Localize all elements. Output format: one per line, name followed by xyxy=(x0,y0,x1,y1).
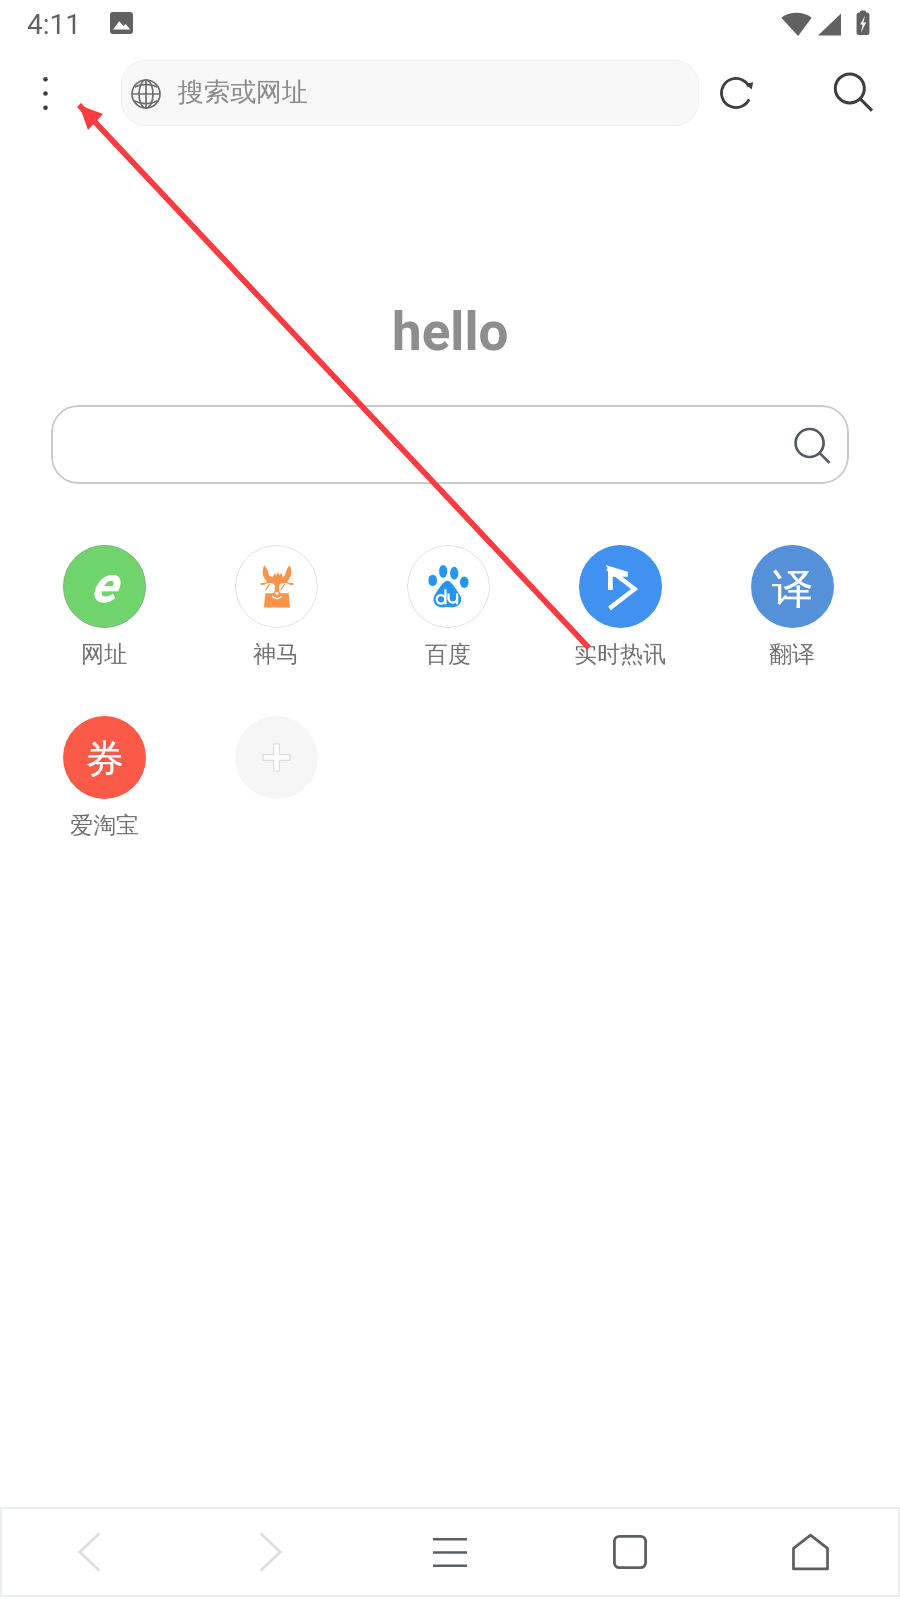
staticText: 神马 xyxy=(253,640,299,669)
staticText: 网址 xyxy=(81,640,127,669)
button[interactable]: Menu xyxy=(360,1507,540,1597)
button[interactable]: Search xyxy=(51,405,849,484)
button[interactable]: More options xyxy=(14,60,76,126)
button[interactable]: e xyxy=(18,545,190,670)
staticText: 搜索或网址 xyxy=(178,76,308,109)
button[interactable]: Refresh xyxy=(703,60,769,126)
button[interactable]: 实时热讯 xyxy=(534,545,706,670)
other: Add shortcut xyxy=(235,716,318,799)
other: Search xyxy=(790,423,834,467)
staticText: 翻译 xyxy=(769,640,815,669)
staticText: 实时热讯 xyxy=(574,640,666,669)
button[interactable]: Tabs xyxy=(540,1507,720,1597)
button[interactable]: 神马 xyxy=(190,545,362,670)
staticText: 译 xyxy=(772,564,813,616)
staticText: 爱淘宝 xyxy=(70,811,139,840)
button[interactable]: 券 xyxy=(18,716,190,841)
staticText: hello xyxy=(392,301,509,363)
staticText: e xyxy=(91,556,118,615)
button[interactable]: Home xyxy=(720,1507,900,1597)
staticText: 券 xyxy=(86,735,124,783)
staticText: 百度 xyxy=(425,640,471,669)
button[interactable]: 百度 xyxy=(362,545,534,670)
button[interactable]: Forward xyxy=(180,1507,360,1597)
staticText: 4:11 xyxy=(27,8,81,41)
button[interactable]: Add shortcut xyxy=(190,716,362,841)
button[interactable]: Search xyxy=(820,60,886,126)
button[interactable]: Back xyxy=(0,1507,180,1597)
button[interactable]: 搜索或网址 xyxy=(121,60,699,126)
button[interactable]: 译 xyxy=(706,545,878,670)
